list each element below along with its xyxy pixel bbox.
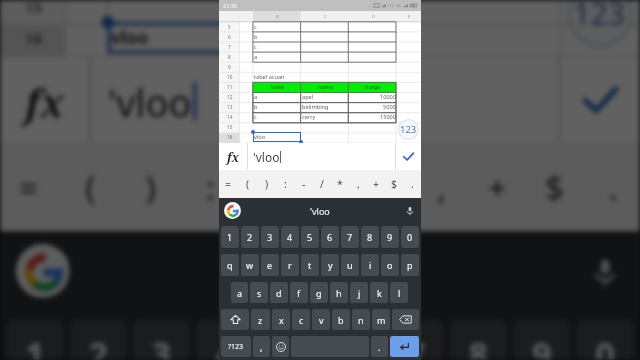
button[interactable]: 123 <box>567 0 634 47</box>
staticText: 7 <box>405 333 428 360</box>
button[interactable]: 3 <box>261 226 279 248</box>
staticText: w <box>246 259 254 271</box>
staticText: 'vloo <box>279 250 361 295</box>
button[interactable]: 0 <box>577 320 634 360</box>
button[interactable]: y <box>321 254 339 276</box>
staticText: 14 <box>227 114 233 120</box>
button[interactable]: s <box>250 282 268 303</box>
button[interactable]: Insert function <box>219 143 247 170</box>
staticText: 123 <box>400 123 417 136</box>
button[interactable]: 2 <box>241 226 259 248</box>
button[interactable]: p <box>401 254 419 276</box>
button[interactable]: 7 <box>386 320 443 360</box>
staticText: z <box>258 314 263 326</box>
button[interactable]: 6 <box>323 320 380 360</box>
button[interactable]: 5 <box>260 320 317 360</box>
button[interactable]: = <box>219 170 238 198</box>
button[interactable]: e <box>261 254 279 276</box>
button[interactable]: a <box>231 282 248 303</box>
button[interactable]: Accept <box>396 143 421 170</box>
staticText: x <box>279 314 284 326</box>
button[interactable]: 1 <box>221 226 239 248</box>
button[interactable]: ( <box>60 143 120 231</box>
button[interactable]: Backspace <box>392 309 419 330</box>
button[interactable]: g <box>310 282 328 303</box>
button[interactable]: $ <box>526 143 583 231</box>
button[interactable]: u <box>341 254 359 276</box>
button[interactable]: 0 <box>401 226 419 248</box>
button[interactable]: * <box>355 143 412 231</box>
button[interactable]: n <box>352 309 370 330</box>
button[interactable]: Shift <box>221 309 249 330</box>
button[interactable]: v <box>312 309 330 330</box>
button[interactable]: : <box>181 143 241 231</box>
button[interactable]: , <box>412 143 469 231</box>
button[interactable]: r <box>281 254 299 276</box>
button[interactable]: / <box>298 143 355 231</box>
button[interactable]: Enter <box>390 336 419 357</box>
button[interactable]: 8 <box>450 320 507 360</box>
button[interactable]: 8 <box>361 226 379 248</box>
button[interactable]: Accept <box>561 57 640 142</box>
button[interactable]: w <box>241 254 259 276</box>
button[interactable]: 'vloo <box>92 57 558 142</box>
button[interactable]: m <box>372 309 390 330</box>
button[interactable]: 3 <box>133 320 190 360</box>
button[interactable]: j <box>350 282 368 303</box>
button[interactable]: 2 <box>70 320 127 360</box>
button[interactable]: z <box>251 309 270 330</box>
button[interactable]: : <box>276 170 295 198</box>
button[interactable]: 123 <box>398 119 419 140</box>
button[interactable]: ) <box>120 143 181 231</box>
button[interactable]: o <box>381 254 399 276</box>
button[interactable]: b <box>332 309 350 330</box>
button[interactable]: Google <box>16 244 70 298</box>
staticText: f <box>297 287 301 299</box>
button[interactable]: ?123 <box>221 336 251 357</box>
button[interactable]: i <box>361 254 379 276</box>
button[interactable]: + <box>469 143 526 231</box>
button[interactable]: = <box>0 143 60 231</box>
staticText: , <box>260 341 263 353</box>
button[interactable]: Emoji <box>272 336 289 357</box>
staticText: 123 <box>573 0 627 35</box>
button[interactable]: * <box>331 170 349 198</box>
button[interactable]: 6 <box>321 226 339 248</box>
button[interactable]: d <box>270 282 288 303</box>
button[interactable]: 1 <box>6 320 63 360</box>
button[interactable]: Google <box>224 202 241 219</box>
button[interactable]: - <box>241 143 298 231</box>
staticText: d <box>276 287 282 299</box>
button[interactable]: t <box>301 254 319 276</box>
button[interactable]: . <box>371 336 388 357</box>
button[interactable]: 9 <box>513 320 570 360</box>
button[interactable]: f <box>290 282 308 303</box>
button[interactable]: k <box>370 282 388 303</box>
staticText: / <box>320 165 333 209</box>
button[interactable]: . <box>403 170 421 198</box>
button[interactable]: 4 <box>196 320 253 360</box>
button[interactable]: c <box>292 309 310 330</box>
button[interactable]: ) <box>257 170 276 198</box>
button[interactable]: $ <box>385 170 403 198</box>
button[interactable]: . <box>583 143 640 231</box>
button[interactable]: h <box>330 282 348 303</box>
button[interactable]: l <box>390 282 408 303</box>
button[interactable]: - <box>295 170 313 198</box>
button[interactable]: 'vloo <box>248 143 395 170</box>
button[interactable]: , <box>253 336 270 357</box>
button[interactable]: / <box>313 170 331 198</box>
button[interactable]: x <box>272 309 290 330</box>
button[interactable]: Insert function <box>0 57 89 142</box>
button[interactable]: Voice input <box>586 253 621 288</box>
button[interactable]: 7 <box>341 226 359 248</box>
button[interactable]: , <box>349 170 367 198</box>
button[interactable]: + <box>367 170 385 198</box>
button[interactable]: q <box>221 254 239 276</box>
button[interactable]: ( <box>238 170 257 198</box>
button[interactable]: 9 <box>381 226 399 248</box>
button[interactable]: 5 <box>301 226 319 248</box>
button[interactable]: Voice input <box>404 205 415 216</box>
button[interactable]: 4 <box>281 226 299 248</box>
